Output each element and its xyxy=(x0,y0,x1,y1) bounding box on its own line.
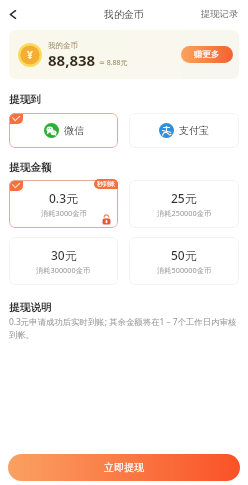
staticText: 25元 xyxy=(171,190,197,206)
staticText: 消耗500000金币 xyxy=(157,265,212,275)
staticText: 0.3元申请成功后实时到账; 其余金额将在1－7个工作日内审核到帐。 xyxy=(9,316,239,340)
staticText: 88,838 xyxy=(48,50,96,70)
staticText: 赚更多 xyxy=(194,49,220,60)
staticText: 消耗3000金币 xyxy=(41,208,87,218)
staticText: 提现记录 xyxy=(201,8,239,20)
button[interactable]: 微信 xyxy=(9,113,118,148)
staticText: ¥ xyxy=(27,48,33,62)
button[interactable]: Back xyxy=(0,0,26,26)
staticText: 提现到 xyxy=(9,93,41,106)
staticText: ≈ 8.88元 xyxy=(99,58,128,68)
staticText: 30元 xyxy=(51,247,77,263)
button[interactable]: 30元 xyxy=(9,237,118,285)
staticText: 我的金币 xyxy=(48,41,78,50)
staticText: 秒到账 xyxy=(97,180,115,188)
button[interactable]: 50元 xyxy=(129,237,239,285)
staticText: 50元 xyxy=(171,247,197,263)
staticText: 提现说明 xyxy=(9,301,52,314)
staticText: 支付宝 xyxy=(179,124,209,137)
staticText: 消耗300000金币 xyxy=(36,265,91,275)
staticText: 提现金额 xyxy=(9,161,52,174)
button[interactable]: 支付宝 xyxy=(129,113,239,148)
staticText: 微信 xyxy=(64,124,84,137)
button[interactable]: 赚更多 xyxy=(181,46,233,63)
staticText: 0.3元 xyxy=(49,190,78,206)
button[interactable]: 25元 xyxy=(129,180,239,228)
button[interactable]: 立即提现 xyxy=(8,454,240,481)
staticText: 消耗250000金币 xyxy=(157,208,212,218)
staticText: 立即提现 xyxy=(104,461,144,474)
staticText: 我的金币 xyxy=(104,8,144,21)
button[interactable]: 0.3元 xyxy=(9,180,118,228)
button[interactable]: 提现记录 xyxy=(201,0,239,26)
